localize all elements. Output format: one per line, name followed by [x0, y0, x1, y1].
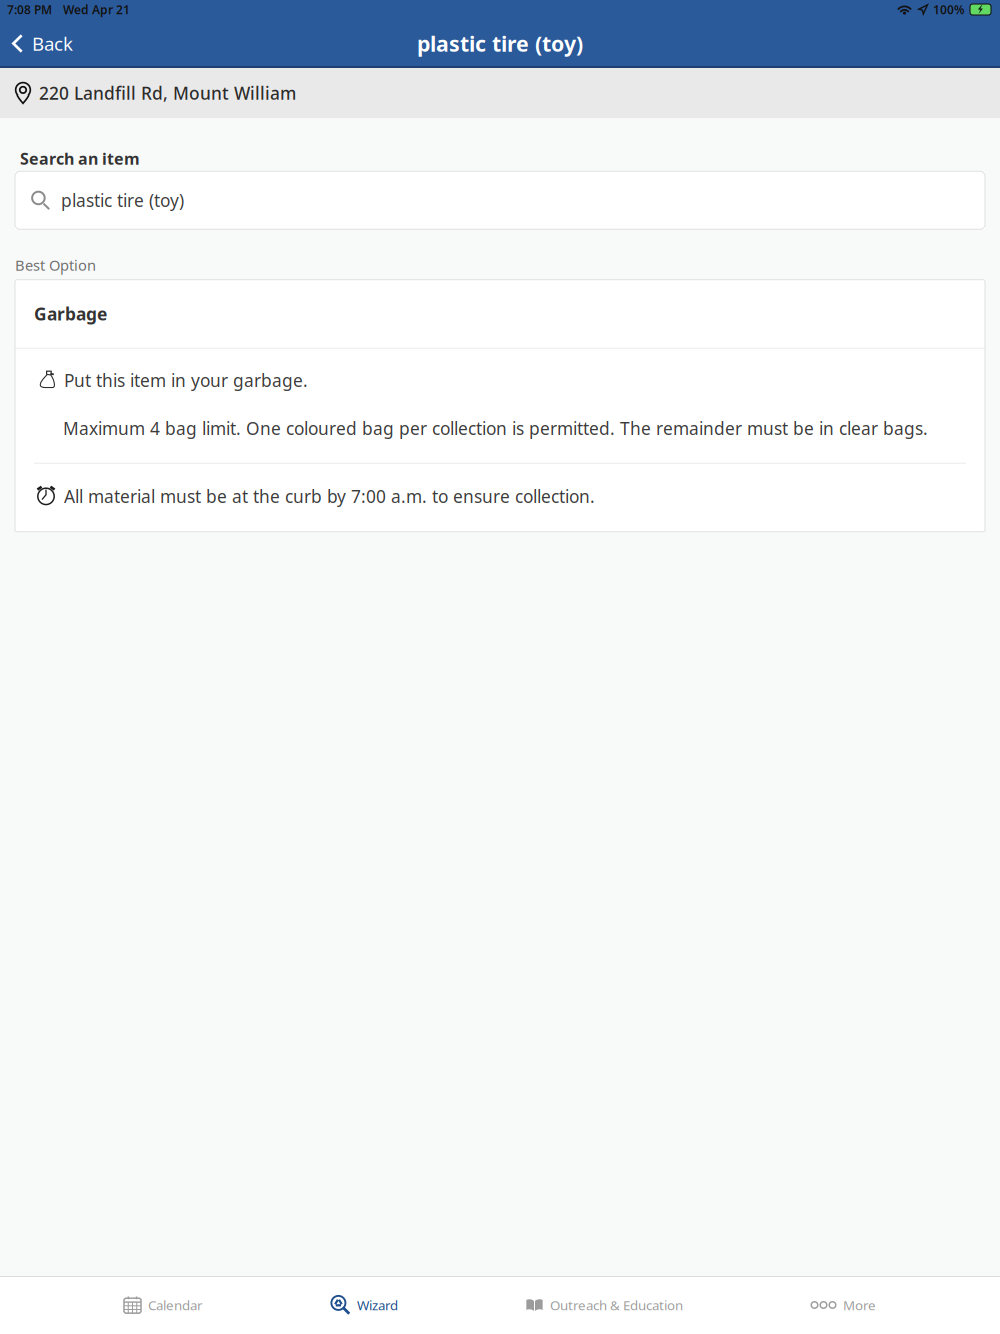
button[interactable]: Outreach & Education	[526, 1276, 683, 1334]
staticText: Wizard	[357, 1296, 398, 1314]
staticText: plastic tire (toy)	[417, 29, 583, 58]
staticText: Calendar	[148, 1296, 203, 1314]
staticText: Maximum 4 bag limit. One coloured bag pe…	[63, 417, 928, 440]
staticText: 7:08 PM	[7, 1, 52, 17]
staticText: Back	[32, 31, 73, 56]
button[interactable]: Back	[0, 19, 85, 67]
staticText: More	[843, 1296, 876, 1314]
button[interactable]: plastic tire (toy)	[15, 171, 985, 229]
staticText: Best Option	[15, 255, 96, 275]
staticText: 220 Landfill Rd, Mount William	[39, 81, 296, 104]
staticText: All material must be at the curb by 7:00…	[64, 485, 595, 508]
staticText: Search an item	[20, 148, 140, 169]
button[interactable]: Calendar	[124, 1276, 203, 1334]
staticText: plastic tire (toy)	[61, 189, 184, 212]
button[interactable]: More	[811, 1276, 876, 1334]
staticText: Wed Apr 21	[63, 1, 130, 17]
staticText: Garbage	[34, 302, 107, 325]
button[interactable]: Wizard	[331, 1276, 398, 1334]
button[interactable]: 220 Landfill Rd, Mount William	[0, 68, 1000, 118]
staticText: Put this item in your garbage.	[64, 369, 308, 392]
staticText: 100%	[933, 1, 965, 17]
staticText: Outreach & Education	[550, 1296, 683, 1314]
